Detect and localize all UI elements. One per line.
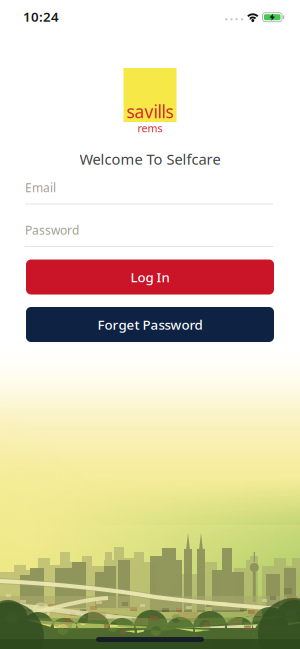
staticText: 10:24 [23,8,59,25]
staticText: Forget Password [97,316,202,333]
staticText: Log In [130,268,169,286]
secureTextField[interactable]: Password [25,222,273,238]
button[interactable]: Forget Password [26,307,274,342]
staticText: Password [25,222,79,238]
staticText: rems [137,121,162,135]
staticText: savills [126,100,173,123]
staticText: Email [25,179,56,195]
staticText: Welcome To Selfcare [79,149,220,169]
button[interactable]: Log In [26,259,274,294]
textField[interactable]: Email [25,179,273,195]
